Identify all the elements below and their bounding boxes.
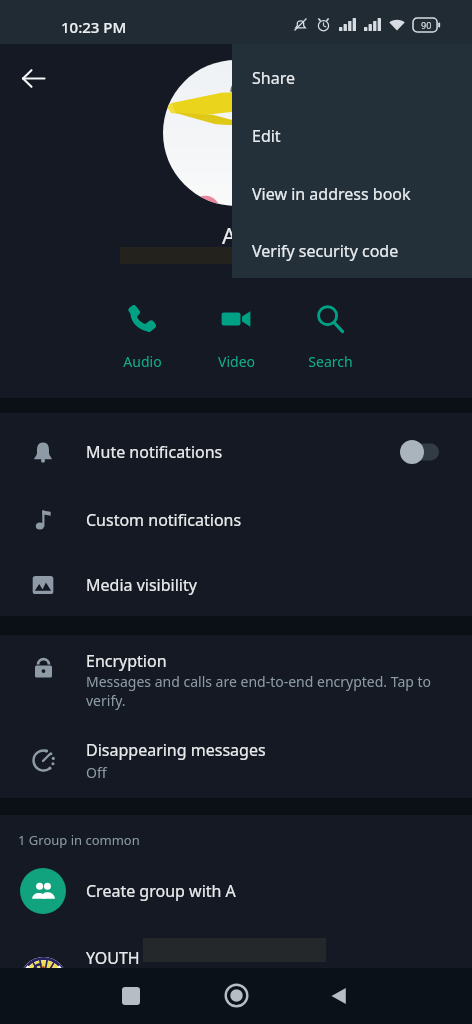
button[interactable]: Create group with A [0,863,472,919]
button[interactable]: Profile photo [163,60,309,206]
staticText: 1 Group in common [18,831,140,849]
staticText: View in address book [252,183,411,205]
staticText: Disappearing messages [86,739,266,761]
button[interactable]: Media visibility [0,554,472,616]
staticText: A [222,220,237,250]
staticText: Edit [252,125,281,147]
button[interactable]: Recent apps [96,968,166,1023]
staticText: Mute notifications [86,441,223,463]
staticText: 10:23 PM [61,17,127,37]
staticText: Verify security code [252,240,399,262]
staticText: Encryption [86,650,167,672]
button[interactable]: Home [201,968,271,1023]
staticText: YOUTH [86,947,140,968]
staticText: Create group with A [86,880,236,902]
button[interactable]: YOUTH [0,932,472,968]
staticText: Custom notifications [86,509,242,531]
staticText: Share [252,67,295,89]
button[interactable]: Search [283,280,377,398]
button[interactable]: Audio [95,280,189,398]
staticText: 90 [421,19,432,31]
button[interactable]: Mute notifications [0,417,472,486]
button[interactable]: Back [12,57,54,99]
button[interactable]: Custom notifications [0,486,472,554]
button[interactable]: View in address book [232,165,472,223]
button[interactable]: Share [232,49,472,107]
button[interactable]: Verify security code [232,223,472,278]
staticText: Messages and calls are end-to-end encryp… [86,672,434,710]
staticText: Media visibility [86,574,197,596]
staticText: Audio [123,352,162,371]
button[interactable]: Encryption [0,635,472,723]
staticText: Video [218,352,255,371]
button[interactable]: Edit [232,107,472,165]
button[interactable]: Mute notifications toggle [400,437,452,467]
staticText: Search [308,352,353,371]
button[interactable]: Video [189,280,283,398]
button[interactable]: Back [304,968,374,1023]
button[interactable]: Disappearing messages [0,723,472,798]
staticText: Off [86,763,107,782]
